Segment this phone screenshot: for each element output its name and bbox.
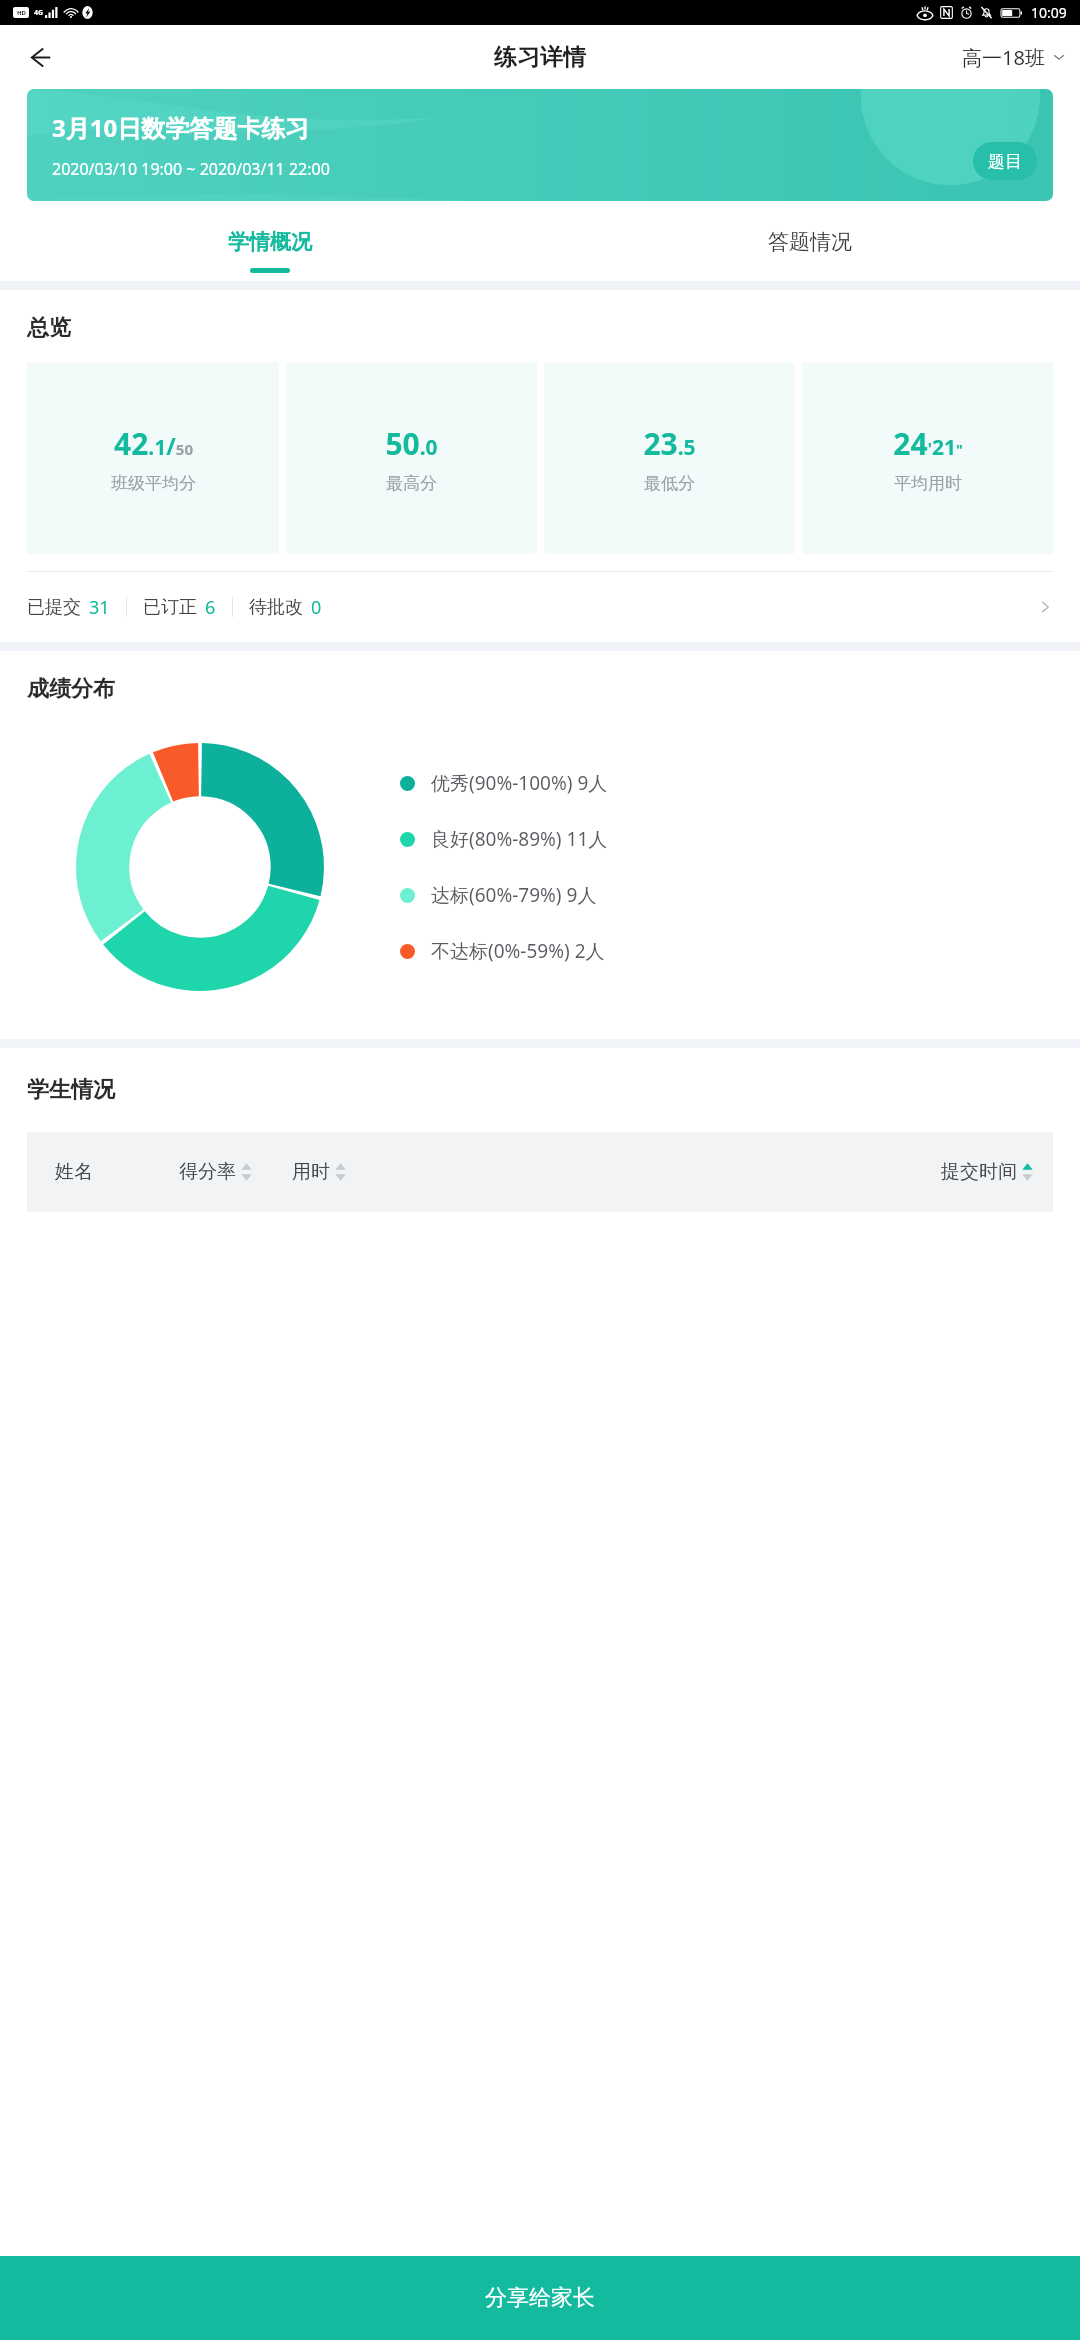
staticText: 23.5 — [643, 423, 696, 464]
staticText: 最高分 — [386, 473, 437, 494]
staticText: 已订正 — [143, 596, 197, 619]
button[interactable]: 50.0 — [286, 362, 537, 554]
staticText: 分享给家长 — [485, 2284, 595, 2312]
staticText: 31 — [89, 595, 110, 620]
staticText: 3月10日数学答题卡练习 — [52, 111, 310, 144]
button[interactable]: 3月10日数学答题卡练习 — [27, 89, 1053, 201]
button[interactable]: 24'21" — [802, 362, 1053, 554]
staticText: 班级平均分 — [111, 473, 196, 494]
staticText: 姓名 — [55, 1160, 93, 1184]
staticText: 4G — [34, 8, 44, 18]
staticText: 不达标(0%-59%) 2人 — [431, 938, 605, 964]
button[interactable]: 分享给家长 — [0, 2256, 1080, 2340]
staticText: 24'21" — [893, 423, 963, 464]
staticText: 良好(80%-89%) 11人 — [431, 826, 608, 852]
staticText: 2020/03/10 19:00 ~ 2020/03/11 22:00 — [52, 158, 330, 180]
staticText: 42.1/50 — [114, 423, 193, 464]
staticText: 成绩分布 — [27, 675, 115, 703]
staticText: 高一18班 — [962, 44, 1045, 71]
staticText: 6 — [205, 595, 216, 620]
staticText: 50.0 — [385, 423, 438, 464]
staticText: 得分率 — [179, 1160, 236, 1184]
button[interactable]: 用时 — [292, 1160, 346, 1184]
staticText: 题目 — [988, 151, 1022, 172]
staticText: 练习详情 — [494, 43, 586, 72]
staticText: 优秀(90%-100%) 9人 — [431, 770, 608, 796]
staticText: 待批改 — [249, 596, 303, 619]
staticText: 提交时间 — [941, 1160, 1017, 1184]
button[interactable]: 提交时间 — [941, 1160, 1033, 1184]
button[interactable]: 得分率 — [179, 1160, 252, 1184]
button[interactable]: 题目 — [973, 142, 1037, 180]
staticText: 总览 — [27, 314, 71, 342]
button[interactable]: 答题情况 — [540, 217, 1080, 281]
button[interactable]: Back — [16, 33, 64, 81]
staticText: HD — [17, 9, 26, 17]
staticText: 用时 — [292, 1160, 330, 1184]
button[interactable]: 高一18班 — [962, 33, 1066, 81]
staticText: 平均用时 — [894, 473, 962, 494]
button[interactable]: 学情概况 — [0, 217, 540, 281]
staticText: 学生情况 — [27, 1076, 115, 1104]
staticText: 学情概况 — [228, 229, 312, 255]
staticText: 答题情况 — [768, 229, 852, 255]
button[interactable]: 已提交 — [0, 572, 1080, 642]
button[interactable]: 42.1/50 — [27, 362, 279, 554]
staticText: 达标(60%-79%) 9人 — [431, 882, 597, 908]
button[interactable]: 23.5 — [544, 362, 795, 554]
staticText: 0 — [311, 595, 322, 620]
staticText: 10:09 — [1031, 3, 1067, 22]
staticText: 最低分 — [644, 473, 695, 494]
staticText: 已提交 — [27, 596, 81, 619]
